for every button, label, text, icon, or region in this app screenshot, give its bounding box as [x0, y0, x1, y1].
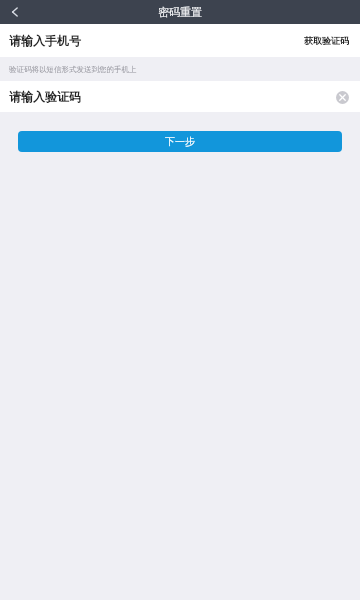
staticText: 获取验证码: [304, 35, 349, 46]
staticText: 密码重置: [158, 5, 202, 19]
staticText: 请输入验证码: [9, 89, 81, 104]
button[interactable]: 下一步: [18, 131, 342, 152]
button[interactable]: Back: [0, 0, 30, 24]
button[interactable]: Clear: [332, 87, 352, 107]
staticText: 请输入手机号: [9, 33, 81, 48]
staticText: 下一步: [165, 135, 195, 148]
button[interactable]: 获取验证码: [302, 31, 351, 50]
staticText: 验证码将以短信形式发送到您的手机上: [9, 65, 137, 74]
